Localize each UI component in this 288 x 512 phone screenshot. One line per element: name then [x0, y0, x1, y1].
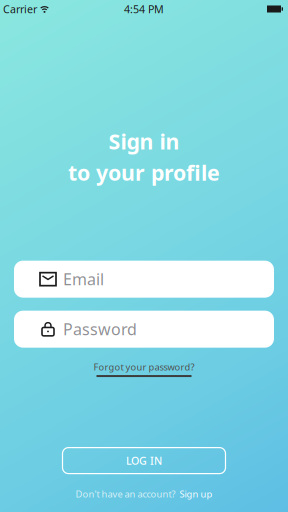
staticText: Sign in — [108, 127, 179, 155]
staticText: Don't have an account? — [75, 488, 175, 500]
staticText: to your profile — [68, 158, 220, 187]
button[interactable]: Password — [14, 311, 274, 348]
staticText: Password — [63, 318, 137, 340]
button[interactable]: Forgot your password? — [93, 361, 194, 377]
button[interactable]: LOG IN — [62, 448, 225, 474]
staticText: Sign up — [179, 488, 212, 500]
button[interactable]: Sign up — [179, 488, 212, 500]
button[interactable]: Email — [14, 261, 274, 298]
staticText: LOG IN — [126, 453, 162, 468]
staticText: Carrier — [3, 2, 37, 16]
staticText: 4:54 PM — [124, 2, 164, 16]
staticText: Forgot your password? — [93, 361, 194, 373]
staticText: Email — [63, 268, 104, 290]
